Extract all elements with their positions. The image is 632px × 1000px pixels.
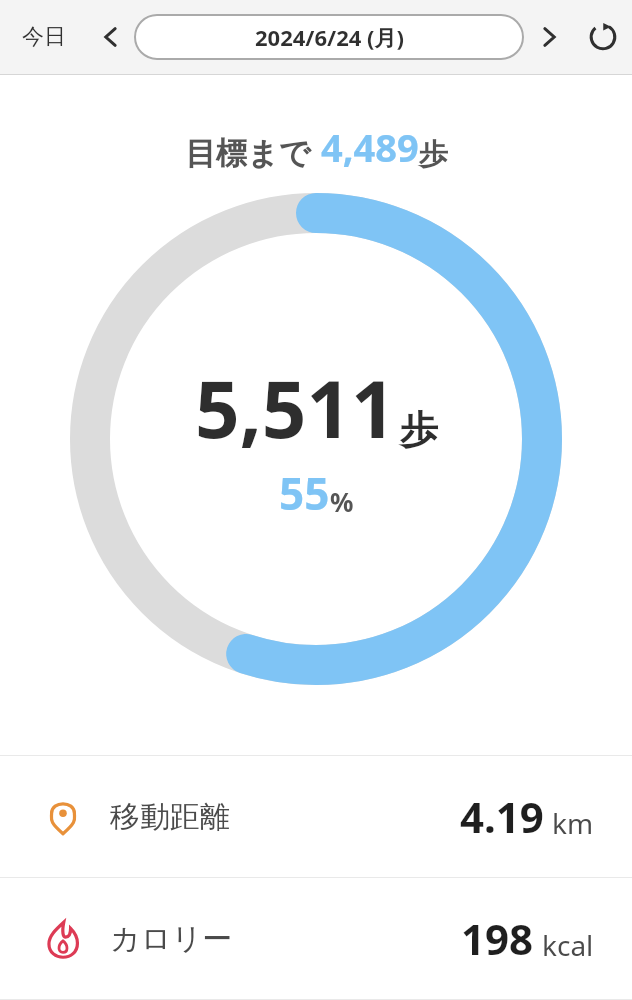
button[interactable]: Next day (524, 12, 574, 62)
staticText: 5,511 (195, 355, 396, 461)
staticText: 歩 (419, 136, 448, 173)
button[interactable]: カロリー (0, 878, 632, 999)
staticText: 目標まで (185, 134, 311, 173)
staticText: kcal (542, 926, 594, 964)
button[interactable]: 今日 (0, 15, 88, 59)
button[interactable]: Previous day (88, 14, 134, 60)
staticText: 移動距離 (110, 798, 230, 836)
staticText: 今日 (22, 23, 66, 51)
staticText: km (552, 804, 594, 842)
staticText: 歩 (400, 406, 438, 454)
staticText: 4.19 (460, 788, 544, 845)
staticText: カロリー (110, 920, 233, 958)
button[interactable]: 2024/6/24 (月) (134, 14, 524, 60)
staticText: 4,489 (321, 121, 419, 173)
staticText: 2024/6/24 (月) (255, 22, 404, 52)
staticText: % (330, 484, 354, 519)
staticText: 55 (279, 463, 330, 523)
button[interactable]: 移動距離 (0, 756, 632, 877)
button[interactable]: Refresh (574, 8, 632, 66)
staticText: 198 (461, 910, 534, 967)
